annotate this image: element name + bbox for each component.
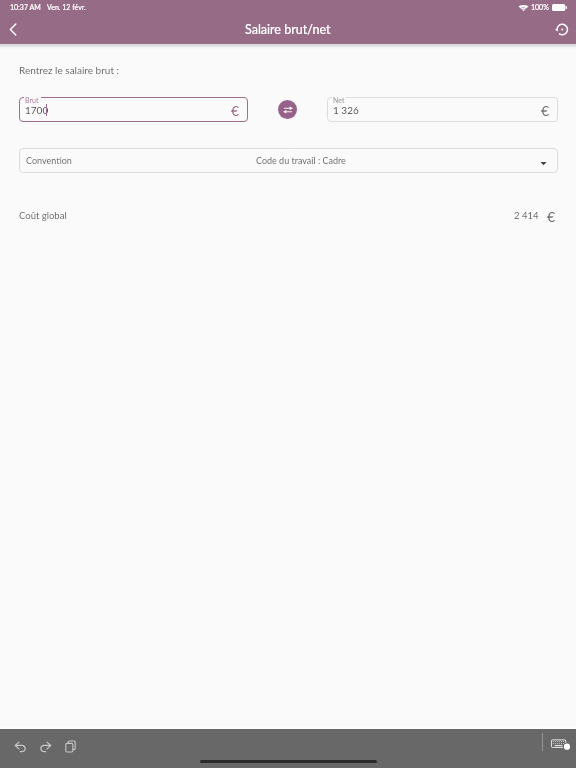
- staticText: 100%: [531, 3, 549, 11]
- button[interactable]: Back: [0, 16, 26, 42]
- staticText: Brut: [25, 96, 39, 104]
- button[interactable]: Brut: [19, 97, 248, 122]
- button[interactable]: Net: [327, 97, 558, 122]
- button[interactable]: Clipboard: [57, 733, 83, 759]
- staticText: Ven. 12 févr.: [47, 3, 86, 11]
- button[interactable]: Convention: [19, 148, 558, 173]
- staticText: Code du travail : Cadre: [256, 155, 346, 166]
- button[interactable]: Redo: [32, 733, 58, 759]
- staticText: Net: [333, 96, 345, 104]
- button[interactable]: Swap brut and net: [278, 100, 297, 119]
- staticText: 1 326: [333, 104, 359, 116]
- staticText: €: [541, 102, 550, 119]
- staticText: €: [547, 208, 556, 225]
- staticText: 2 414: [514, 210, 539, 221]
- staticText: Convention: [26, 155, 72, 166]
- staticText: 1700: [25, 104, 49, 116]
- staticText: 10:37 AM: [10, 3, 41, 11]
- staticText: Rentrez le salaire brut :: [19, 64, 120, 76]
- staticText: Salaire brut/net: [245, 22, 331, 37]
- button[interactable]: Undo: [7, 733, 33, 759]
- button[interactable]: Reset history: [548, 16, 574, 42]
- button[interactable]: Switch keyboard: [548, 732, 572, 756]
- staticText: Coût global: [19, 210, 67, 221]
- staticText: €: [231, 102, 240, 119]
